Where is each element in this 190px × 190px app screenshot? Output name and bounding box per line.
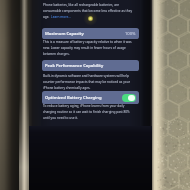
- staticText: Phone batteries, like all rechargeable b…: [43, 3, 120, 7]
- button[interactable]: Maximum Capacity: [42, 28, 139, 39]
- button[interactable]: Learn more...: [51, 15, 71, 19]
- staticText: Maximum Capacity: [45, 31, 84, 37]
- staticText: Built-in dynamic software and hardware s…: [43, 74, 129, 78]
- staticText: charging routine so it can wait to finis…: [43, 110, 130, 114]
- staticText: iPhone battery chemically ages.: [43, 86, 91, 90]
- staticText: Optimized Battery Charging: [45, 95, 102, 101]
- staticText: until you need to use it.: [43, 116, 79, 120]
- staticText: new. Lower capacity may result in fewer …: [43, 46, 126, 50]
- staticText: counter performance impacts that may be …: [43, 80, 131, 84]
- staticText: age.: [43, 15, 51, 19]
- staticText: This is a measure of battery capacity re…: [43, 40, 132, 44]
- button[interactable]: Peak Performance Capability: [42, 60, 139, 71]
- button[interactable]: Optimized Battery Charging toggle: [122, 94, 136, 102]
- staticText: To reduce battery aging, iPhone learns f…: [43, 104, 125, 108]
- staticText: 100%: [125, 31, 136, 37]
- button[interactable]: Optimized Battery Charging: [42, 91, 139, 104]
- staticText: Peak Performance Capability: [45, 63, 104, 69]
- staticText: between charges.: [43, 52, 70, 56]
- staticText: consumable components that become less e…: [43, 9, 133, 13]
